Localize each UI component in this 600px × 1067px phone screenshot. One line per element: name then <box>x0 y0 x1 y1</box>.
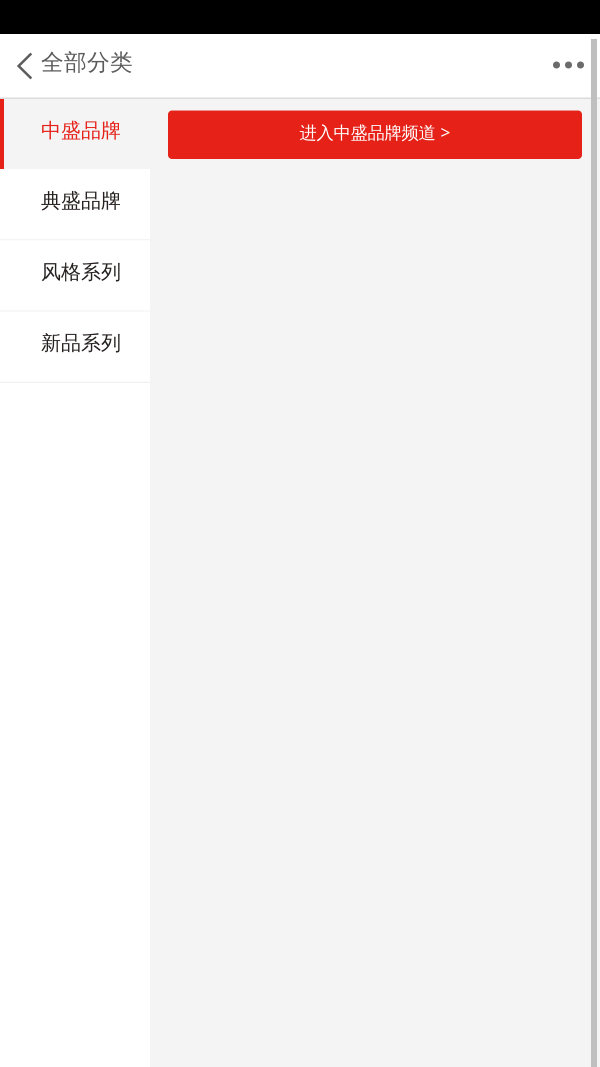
staticText: 风格系列 <box>41 260 121 284</box>
staticText: 进入中盛品牌频道 > <box>299 121 450 144</box>
button[interactable]: 风格系列 <box>0 240 150 311</box>
staticText: 典盛品牌 <box>41 188 121 213</box>
button[interactable]: 进入中盛品牌频道 > <box>168 110 582 159</box>
button[interactable]: 典盛品牌 <box>0 169 150 239</box>
staticText: 新品系列 <box>41 331 121 355</box>
staticText: 中盛品牌 <box>41 118 121 143</box>
button[interactable]: 新品系列 <box>0 312 150 382</box>
button[interactable]: 全部分类 <box>0 34 147 98</box>
staticText: 全部分类 <box>41 49 133 76</box>
button[interactable]: More <box>529 34 600 98</box>
button[interactable]: 中盛品牌 <box>0 99 150 169</box>
